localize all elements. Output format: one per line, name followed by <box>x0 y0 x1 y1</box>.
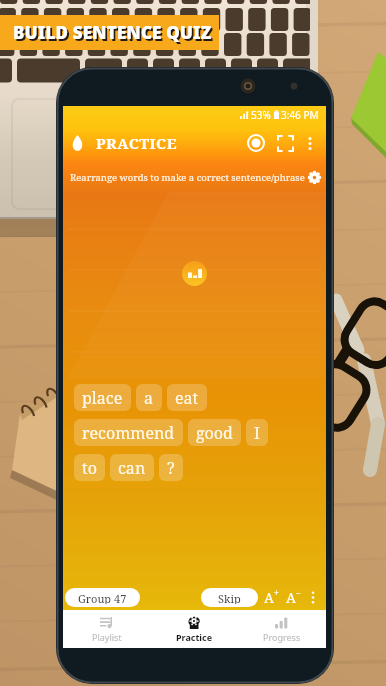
button[interactable]: Group 47 <box>65 588 140 607</box>
button[interactable]: eat <box>167 384 207 411</box>
button[interactable]: Playlist <box>63 610 150 648</box>
staticText: Playlist <box>92 631 122 643</box>
staticText: Rearrange words to make a correct senten… <box>70 171 305 184</box>
button[interactable]: ? <box>159 454 183 481</box>
staticText: BUILD SENTENCE QUIZ <box>15 23 214 46</box>
button[interactable]: good <box>188 419 241 446</box>
staticText: place <box>82 387 123 409</box>
staticText: PRACTICE <box>96 133 177 153</box>
button[interactable]: Fullscreen <box>277 135 294 152</box>
staticText: Practice <box>176 631 213 643</box>
button[interactable]: recommend <box>74 419 183 446</box>
staticText: 53% <box>251 108 271 122</box>
button[interactable]: More options <box>308 590 318 605</box>
button[interactable]: Record <box>247 134 265 152</box>
button[interactable]: Practice <box>150 610 238 648</box>
button[interactable]: to <box>74 454 105 481</box>
staticText: + <box>274 587 279 598</box>
button[interactable]: Difficulty level <box>182 261 207 286</box>
button[interactable]: place <box>74 384 131 411</box>
staticText: − <box>296 587 301 598</box>
staticText: Progress <box>263 631 301 643</box>
button[interactable]: Progress <box>238 610 326 648</box>
button[interactable]: Skip <box>201 588 258 607</box>
staticText: Skip <box>218 591 241 604</box>
button[interactable]: More options <box>303 135 317 152</box>
staticText: 3:46 PM <box>281 108 319 122</box>
button[interactable]: can <box>110 454 154 481</box>
staticText: can <box>118 457 146 479</box>
staticText: ? <box>167 457 175 479</box>
staticText: to <box>82 457 97 479</box>
staticText: A <box>286 588 296 607</box>
button[interactable]: a <box>136 384 162 411</box>
button[interactable]: Text size + <box>264 588 279 607</box>
staticText: eat <box>175 387 199 409</box>
staticText: I <box>254 422 260 444</box>
button[interactable]: Settings <box>308 171 321 184</box>
button[interactable]: I <box>246 419 268 446</box>
button[interactable]: Text size − <box>286 588 301 607</box>
staticText: BUILD SENTENCE QUIZ <box>13 21 212 44</box>
staticText: a <box>144 387 154 409</box>
staticText: good <box>196 422 233 444</box>
staticText: recommend <box>82 422 175 444</box>
staticText: A <box>264 588 274 607</box>
staticText: Group 47 <box>78 591 127 604</box>
